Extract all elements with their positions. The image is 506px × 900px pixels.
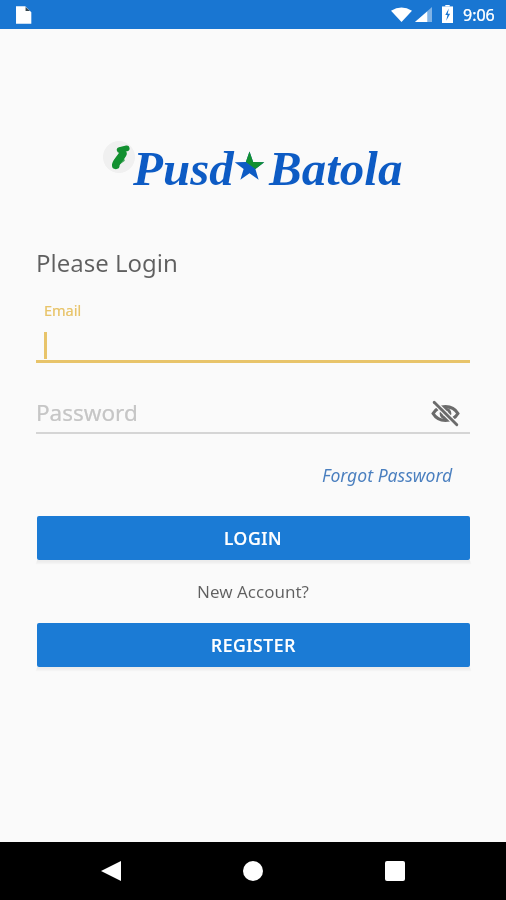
button[interactable]: Email — [36, 322, 470, 364]
staticText: Email — [44, 300, 82, 320]
staticText: Batola — [269, 141, 403, 195]
button[interactable]: Password — [36, 392, 470, 435]
button[interactable]: LOGIN — [37, 516, 470, 560]
button[interactable]: Back — [86, 846, 136, 896]
staticText: New Account? — [0, 580, 506, 603]
staticText: 9:06 — [463, 4, 495, 26]
button[interactable]: REGISTER — [37, 623, 470, 667]
staticText: Please Login — [36, 246, 178, 279]
button[interactable]: Recent apps — [370, 846, 420, 896]
button[interactable]: Forgot Password — [322, 463, 453, 487]
button[interactable]: Home — [228, 846, 278, 896]
staticText: Pusd — [133, 141, 234, 195]
staticText: LOGIN — [224, 526, 283, 550]
staticText: Password — [36, 397, 138, 428]
button[interactable]: Show password — [427, 395, 463, 431]
staticText: REGISTER — [211, 633, 296, 657]
